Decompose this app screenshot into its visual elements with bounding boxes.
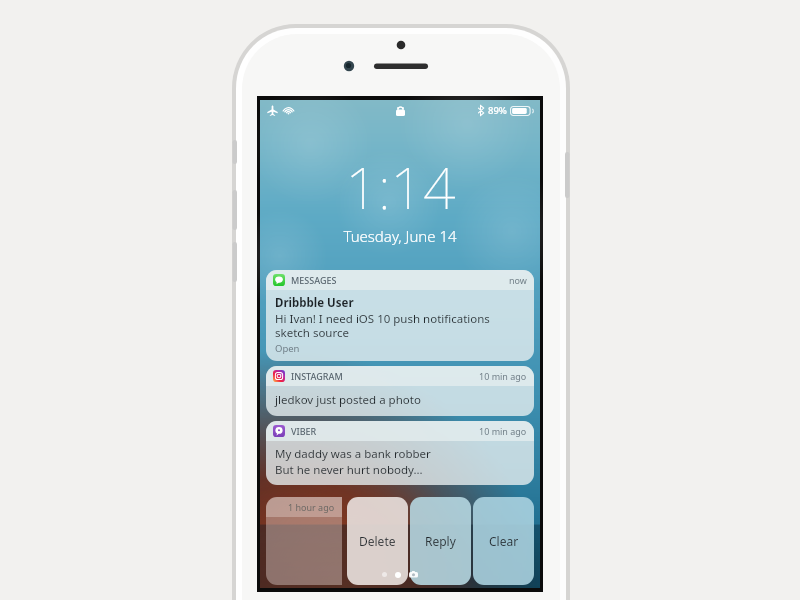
button[interactable]: Current page [395, 572, 401, 578]
staticText: Reply [425, 533, 456, 549]
staticText: Open [275, 342, 300, 355]
button[interactable]: MESSAGES [266, 270, 534, 361]
staticText: 1:14 [345, 148, 456, 226]
button[interactable]: 1 hour ago [266, 497, 342, 585]
staticText: MESSAGES [291, 274, 337, 286]
staticText: 10 min ago [479, 425, 527, 437]
button[interactable]: Page 1 [382, 572, 387, 577]
staticText: My daddy was a bank robber [275, 446, 431, 462]
button[interactable]: Clear [473, 497, 534, 585]
staticText: VIBER [291, 425, 317, 437]
staticText: 10 min ago [479, 370, 527, 382]
button[interactable]: Camera [409, 570, 418, 579]
staticText: 1 hour ago [288, 501, 335, 513]
button[interactable]: VIBER [266, 421, 534, 485]
button[interactable]: Reply [410, 497, 471, 585]
staticText: Tuesday, June 14 [343, 226, 457, 246]
staticText: 89% [488, 104, 507, 117]
staticText: Hi Ivan! I need iOS 10 push notification… [275, 311, 525, 340]
staticText: INSTAGRAM [291, 370, 343, 382]
staticText: Dribbble User [275, 295, 354, 311]
staticText: Delete [359, 533, 396, 549]
staticText: But he never hurt nobody... [275, 462, 423, 478]
staticText: jledkov just posted a photo [275, 392, 421, 408]
button[interactable]: INSTAGRAM [266, 366, 534, 416]
button[interactable]: Delete [347, 497, 408, 585]
staticText: Clear [489, 533, 519, 549]
staticText: now [509, 274, 527, 286]
